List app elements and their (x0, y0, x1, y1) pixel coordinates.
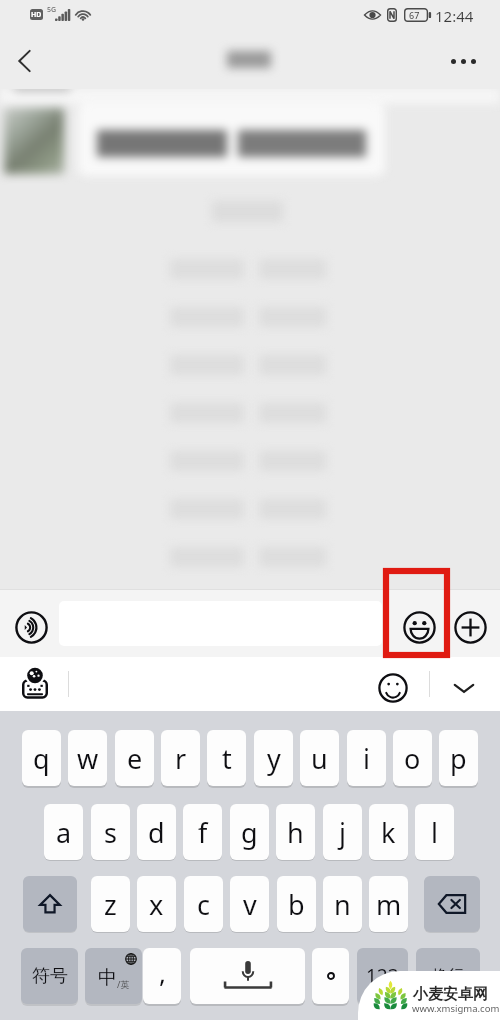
button[interactable]: g (230, 804, 269, 860)
button[interactable]: Symbols (21, 948, 78, 1004)
staticText: y (267, 740, 281, 777)
staticText: z (104, 886, 117, 923)
button[interactable]: Chinese English toggle (85, 948, 142, 1004)
button[interactable]: Backspace (424, 876, 480, 932)
staticText: r (175, 740, 187, 777)
button[interactable] (190, 948, 305, 1004)
staticText: 123 (366, 963, 399, 989)
button[interactable]: b (277, 876, 316, 932)
staticText: t (222, 740, 232, 777)
button[interactable]: More (450, 607, 490, 647)
staticText: 5G (47, 5, 57, 15)
staticText: m (376, 886, 402, 923)
button[interactable]: f (183, 804, 222, 860)
staticText: , (159, 955, 166, 990)
button[interactable]: o (393, 730, 432, 786)
button[interactable]: r (161, 730, 200, 786)
button[interactable]: Emoji keyboard (373, 668, 413, 708)
staticText: /英 (117, 978, 130, 990)
staticText: 符号 (32, 965, 68, 988)
button[interactable]: Switch input language (15, 661, 55, 705)
button[interactable]: c (184, 876, 223, 932)
button[interactable]: t (207, 730, 246, 786)
button[interactable]: x (137, 876, 176, 932)
staticText: u (311, 740, 328, 777)
button[interactable] (312, 948, 349, 1004)
button[interactable]: Voice input (11, 607, 51, 647)
staticText: HD (31, 10, 42, 20)
button[interactable]: n (323, 876, 362, 932)
staticText: h (287, 814, 304, 851)
staticText: o (404, 740, 421, 777)
staticText: www.xmsigma.com (412, 1002, 500, 1015)
button[interactable]: y (254, 730, 293, 786)
button[interactable]: Back (1, 38, 47, 84)
button[interactable]: p (439, 730, 478, 786)
staticText: i (363, 740, 370, 777)
staticText: 换行 (432, 966, 464, 986)
staticText: p (450, 740, 467, 777)
button[interactable]: i (347, 730, 386, 786)
staticText: 12:44 (435, 6, 474, 26)
button[interactable]: h (276, 804, 315, 860)
staticText: c (197, 886, 210, 923)
button[interactable]: a (44, 804, 83, 860)
button[interactable]: q (22, 730, 61, 786)
button[interactable]: e (115, 730, 154, 786)
staticText: d (148, 814, 165, 851)
button[interactable]: Hide keyboard (444, 668, 484, 708)
staticText: 67 (409, 9, 420, 21)
staticText: g (241, 814, 258, 851)
staticText: x (149, 886, 164, 923)
staticText: f (198, 814, 208, 851)
staticText: s (104, 814, 117, 851)
staticText: b (288, 886, 305, 923)
staticText: l (431, 814, 438, 851)
button[interactable]: s (91, 804, 130, 860)
staticText: j (339, 814, 346, 851)
button[interactable]: m (369, 876, 408, 932)
button[interactable]: u (300, 730, 339, 786)
staticText: k (381, 814, 396, 851)
button[interactable]: Numbers (357, 948, 408, 1004)
button[interactable]: l (415, 804, 454, 860)
button[interactable]: k (369, 804, 408, 860)
staticText: e (127, 740, 143, 777)
button[interactable]: d (137, 804, 176, 860)
staticText: a (56, 814, 72, 851)
button[interactable]: Emoji (399, 607, 439, 647)
button[interactable]: More options (440, 38, 486, 84)
button[interactable]: j (323, 804, 362, 860)
button[interactable]: z (91, 876, 130, 932)
staticText: 小麦安卓网 (413, 985, 488, 1004)
button[interactable]: Enter (416, 948, 480, 1004)
staticText: n (334, 886, 351, 923)
staticText: q (33, 740, 50, 777)
button[interactable]: Shift (23, 876, 77, 932)
staticText: v (243, 886, 257, 923)
staticText: 中 (98, 966, 117, 990)
button[interactable]: w (68, 730, 107, 786)
staticText: w (77, 740, 99, 777)
button[interactable]: , (143, 948, 181, 1004)
button[interactable]: v (230, 876, 269, 932)
